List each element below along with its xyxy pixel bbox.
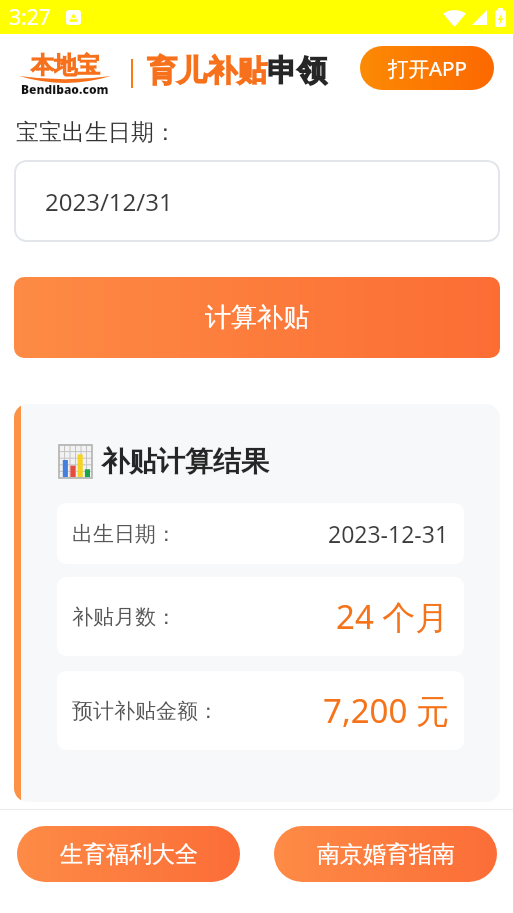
staticText: 2023-12-31 <box>328 518 449 549</box>
staticText: 补贴计算结果 <box>101 444 269 479</box>
button[interactable]: 补贴月数： <box>57 577 464 656</box>
staticText: 育儿补贴 <box>147 52 267 90</box>
staticText: 2023/12/31 <box>45 185 173 218</box>
button[interactable]: 计算补贴 <box>14 277 500 358</box>
button[interactable]: 2023/12/31 <box>14 160 500 242</box>
staticText: 申领 <box>267 52 327 90</box>
staticText: 预计补贴金额： <box>72 698 219 724</box>
staticText: 24 个月 <box>336 594 449 639</box>
staticText: 7,200 元 <box>323 688 449 733</box>
staticText: 3:27 <box>9 3 51 32</box>
staticText: Bendibao.com <box>21 81 109 97</box>
staticText: 补贴月数： <box>72 604 177 630</box>
button[interactable]: 出生日期： <box>57 503 464 564</box>
button[interactable]: 南京婚育指南 <box>274 826 497 882</box>
staticText: 生育福利大全 <box>60 840 198 869</box>
button[interactable]: 预计补贴金额： <box>57 671 464 750</box>
button[interactable]: 生育福利大全 <box>17 826 240 882</box>
staticText: 计算补贴 <box>205 301 309 334</box>
staticText: 南京婚育指南 <box>317 840 455 869</box>
button[interactable]: 打开APP <box>360 46 494 90</box>
staticText: 打开APP <box>388 54 467 82</box>
staticText: 本地宝 <box>31 51 100 80</box>
staticText: 出生日期： <box>72 521 177 547</box>
staticText: 宝宝出生日期： <box>16 118 177 147</box>
